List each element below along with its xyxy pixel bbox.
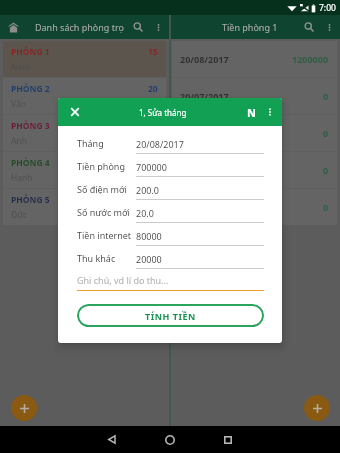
staticText: Đức: [11, 209, 28, 221]
staticText: 20/08/2017: [136, 138, 184, 150]
staticText: 20000: [136, 253, 162, 265]
staticText: 15: [148, 46, 158, 58]
button[interactable]: 20/07/2017: [172, 78, 337, 114]
button[interactable]: PHÒNG 2: [3, 78, 166, 114]
staticText: PHÒNG 4: [11, 157, 50, 169]
staticText: Vân: [11, 98, 26, 110]
staticText: 20/07/2017: [180, 90, 229, 102]
staticText: 0: [323, 201, 329, 213]
staticText: 0: [323, 164, 329, 176]
button[interactable]: PHÒNG 4: [3, 152, 166, 188]
staticText: 20.0: [136, 207, 154, 219]
staticText: Tiền phòng 1: [222, 21, 278, 33]
staticText: TÍNH TIỀN: [145, 310, 196, 322]
button[interactable]: PHÒNG 1: [3, 41, 166, 77]
staticText: PHÒNG 5: [11, 194, 50, 206]
staticText: 0: [323, 90, 329, 102]
button[interactable]: Add room: [11, 395, 37, 421]
staticText: Ghi chú, vd lí do thu...: [77, 274, 169, 286]
button[interactable]: PHÒNG 5: [3, 189, 166, 225]
staticText: Nam: [11, 61, 31, 73]
staticText: 0: [323, 127, 329, 139]
staticText: Số điện mới: [77, 183, 127, 195]
staticText: Hạnh: [11, 172, 33, 184]
staticText: Anh: [11, 135, 27, 147]
staticText: 20/08/2017: [180, 53, 229, 65]
button[interactable]: 20/08/2017: [172, 41, 337, 77]
staticText: Số nước mới: [77, 206, 130, 218]
staticText: Tiền phòng: [77, 160, 125, 172]
staticText: 7:00: [319, 2, 336, 14]
button[interactable]: Home: [150, 426, 190, 453]
staticText: PHÒNG 2: [11, 83, 50, 95]
button[interactable]: Save: [240, 101, 262, 123]
button[interactable]: 20/06/2017: [172, 115, 337, 151]
button[interactable]: TÍNH TIỀN: [77, 304, 264, 327]
button[interactable]: More options: [149, 18, 167, 36]
staticText: PHÒNG 3: [11, 120, 50, 132]
button[interactable]: Ghi chú, vd lí do thu...: [77, 274, 264, 291]
staticText: 20: [148, 83, 158, 95]
button[interactable]: Add payment: [304, 395, 330, 421]
button[interactable]: Search: [127, 16, 149, 38]
staticText: 200.0: [136, 184, 160, 196]
button[interactable]: Close: [64, 101, 86, 123]
button[interactable]: PHÒNG 3: [3, 115, 166, 151]
staticText: Thu khác: [77, 252, 116, 264]
staticText: Tiền internet: [77, 229, 132, 241]
button[interactable]: More options: [320, 18, 338, 36]
button[interactable]: 20/04/2017: [172, 189, 337, 225]
staticText: N: [247, 105, 256, 120]
staticText: 1, Sửa tháng: [139, 107, 187, 118]
staticText: PHÒNG 1: [11, 46, 50, 58]
button[interactable]: More options: [262, 104, 278, 120]
staticText: Tháng: [77, 137, 104, 149]
button[interactable]: Home: [2, 16, 24, 38]
button[interactable]: Recent apps: [208, 426, 248, 453]
button[interactable]: 20/05/2017: [172, 152, 337, 188]
staticText: 1200000: [292, 53, 329, 65]
staticText: 80000: [136, 230, 162, 242]
staticText: Danh sách phòng trọ: [35, 21, 124, 33]
staticText: 700000: [136, 161, 167, 173]
button[interactable]: Search: [298, 16, 320, 38]
button[interactable]: Back: [92, 426, 132, 453]
